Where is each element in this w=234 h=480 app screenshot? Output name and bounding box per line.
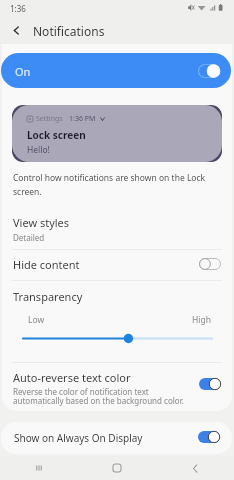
button[interactable]: Auto-reverse text color: [0, 362, 234, 414]
button[interactable]: Back: [6, 16, 26, 44]
staticText: Transparency: [13, 289, 83, 304]
button[interactable]: View styles: [0, 210, 234, 248]
staticText: Notifications: [33, 23, 105, 39]
staticText: Auto-reverse text color: [13, 370, 131, 385]
staticText: Hide content: [13, 257, 80, 272]
staticText: View styles: [13, 215, 70, 230]
button[interactable]: Hide content: [0, 249, 234, 279]
staticText: Lock screen: [27, 128, 86, 142]
button[interactable]: Home: [78, 456, 156, 480]
staticText: 1:36: [10, 3, 26, 14]
staticText: Control how notifications are shown on t…: [13, 172, 223, 197]
button[interactable]: On: [1, 53, 231, 88]
staticText: Low: [28, 314, 45, 326]
button[interactable]: Recents: [0, 456, 78, 480]
button[interactable]: Back: [156, 456, 234, 480]
button[interactable]: Transparency slider: [0, 330, 234, 347]
staticText: On: [15, 64, 31, 79]
button[interactable]: Show on Always On Display: [1, 422, 232, 454]
staticText: High: [192, 314, 211, 326]
staticText: Settings: [36, 114, 63, 124]
staticText: Hello!: [27, 144, 50, 156]
staticText: 1:36 PM: [69, 114, 96, 124]
staticText: Detailed: [13, 232, 45, 243]
staticText: Reverse the color of notification text a…: [13, 386, 184, 407]
staticText: Show on Always On Display: [14, 431, 143, 445]
